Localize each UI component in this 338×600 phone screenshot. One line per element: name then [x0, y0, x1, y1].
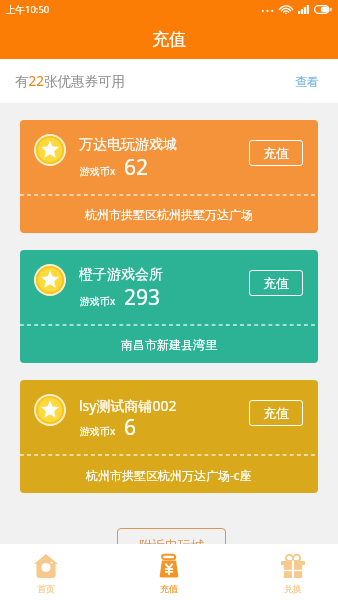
staticText: 首页: [37, 583, 55, 594]
button[interactable]: 有22张优惠券可用: [0, 59, 338, 103]
staticText: 充值: [263, 405, 289, 421]
staticText: 杭州市拱墅区杭州万达广场-c座: [86, 467, 252, 483]
button[interactable]: 充值: [249, 270, 303, 296]
button[interactable]: 充值: [138, 544, 200, 600]
button[interactable]: 查看: [295, 74, 319, 89]
button[interactable]: 兑换: [262, 544, 324, 600]
staticText: 游戏币x: [80, 294, 116, 308]
staticText: 游戏币x: [80, 164, 116, 178]
button[interactable]: 充值: [249, 400, 303, 426]
staticText: 6: [124, 413, 137, 442]
staticText: 充值: [263, 275, 289, 291]
button[interactable]: 首页: [15, 544, 77, 600]
staticText: 充值: [152, 29, 186, 50]
staticText: 杭州市拱墅区杭州拱墅万达广场: [85, 207, 253, 222]
staticText: lsy测试商铺002: [79, 396, 177, 415]
staticText: 充值: [160, 583, 178, 594]
staticText: 293: [124, 283, 161, 312]
staticText: 游戏币x: [80, 424, 116, 438]
staticText: 有22张优惠券可用: [15, 72, 125, 90]
button[interactable]: 万达电玩游戏城: [20, 120, 318, 233]
button[interactable]: 充值: [249, 140, 303, 166]
staticText: 兑换: [284, 583, 302, 594]
button[interactable]: 橙子游戏会所: [20, 250, 318, 363]
button[interactable]: 附近电玩城: [117, 528, 226, 562]
staticText: 上午10:50: [6, 3, 50, 16]
staticText: 橙子游戏会所: [79, 266, 163, 284]
staticText: 充值: [263, 145, 289, 161]
staticText: 万达电玩游戏城: [79, 136, 177, 154]
staticText: 62: [124, 153, 149, 182]
button[interactable]: lsy测试商铺002: [20, 380, 318, 493]
staticText: 南昌市新建县湾里: [121, 337, 217, 352]
staticText: 附近电玩城: [139, 537, 204, 553]
